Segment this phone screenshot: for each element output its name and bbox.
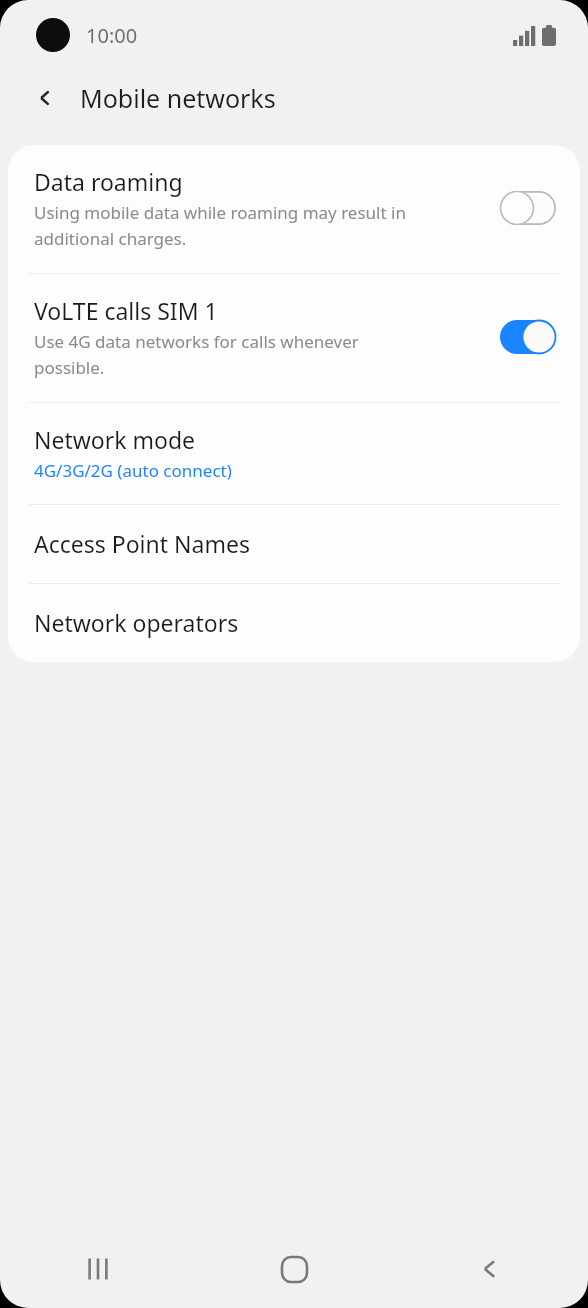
staticText: 10:00 (86, 22, 138, 49)
staticText: Data roaming (34, 166, 183, 197)
staticText: VoLTE calls SIM 1 (34, 295, 218, 326)
button[interactable]: Data roaming (8, 145, 580, 273)
button[interactable]: Recent apps (0, 1230, 196, 1308)
staticText: Using mobile data while roaming may resu… (34, 201, 406, 250)
button[interactable]: Back (22, 74, 70, 122)
button[interactable]: Access Point Names (8, 505, 580, 583)
button[interactable]: Network mode (8, 403, 580, 504)
staticText: 4G/3G/2G (auto connect) (34, 459, 232, 482)
staticText: Network operators (34, 607, 239, 638)
button[interactable]: Toggle off (500, 191, 556, 225)
staticText: Network mode (34, 424, 196, 455)
button[interactable]: Back (392, 1230, 588, 1308)
staticText: Use 4G data networks for calls whenever … (34, 330, 359, 379)
button[interactable]: VoLTE calls SIM 1 (8, 274, 580, 402)
button[interactable]: Toggle on (500, 320, 556, 354)
staticText: Access Point Names (34, 528, 250, 559)
button[interactable]: Network operators (8, 584, 580, 662)
staticText: Mobile networks (80, 81, 276, 115)
button[interactable]: Home (196, 1230, 392, 1308)
